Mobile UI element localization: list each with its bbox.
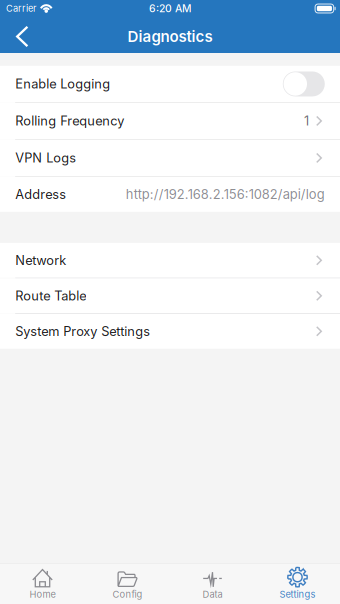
staticText: Rolling Frequency [15, 113, 124, 129]
button[interactable]: Back [0, 20, 43, 53]
staticText: 1 [304, 113, 309, 129]
button[interactable]: Settings [255, 564, 340, 604]
staticText: Route Table [15, 288, 86, 304]
staticText: Home [29, 589, 55, 600]
button[interactable]: Data [170, 564, 255, 604]
staticText: Diagnostics [127, 27, 212, 46]
button[interactable]: Home [0, 564, 85, 604]
button[interactable]: VPN Logs [0, 140, 340, 176]
staticText: Settings [279, 589, 315, 600]
staticText: Data [202, 589, 222, 600]
button[interactable]: Rolling Frequency [0, 103, 340, 139]
staticText: Network [15, 253, 66, 268]
staticText: http://192.168.2.156:1082/api/log [126, 186, 325, 202]
button[interactable]: Network [0, 243, 340, 278]
staticText: System Proxy Settings [15, 324, 150, 339]
button[interactable]: Config [85, 564, 170, 604]
staticText: VPN Logs [15, 150, 76, 166]
button[interactable]: Enable Logging [283, 71, 325, 96]
staticText: Address [15, 187, 66, 202]
button[interactable]: System Proxy Settings [0, 314, 340, 349]
staticText: Carrier [6, 3, 36, 14]
staticText: Enable Logging [15, 76, 110, 92]
button[interactable]: Route Table [0, 278, 340, 313]
staticText: 6:20 AM [149, 2, 191, 15]
staticText: Config [112, 589, 142, 600]
